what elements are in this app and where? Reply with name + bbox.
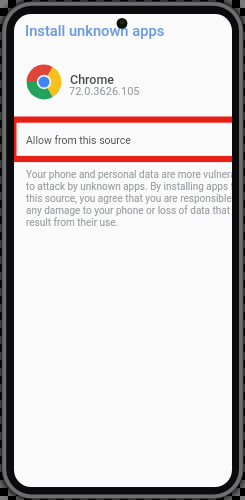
button[interactable]: Chrome: [14, 58, 232, 108]
staticText: Your phone and personal data are more vu…: [26, 169, 232, 229]
staticText: Allow from this source: [26, 134, 131, 146]
staticText: Chrome: [70, 72, 114, 87]
button[interactable]: Allow from this source: [14, 116, 232, 163]
staticText: 72.0.3626.105: [69, 85, 140, 98]
button[interactable]: Install unknown apps: [25, 22, 165, 39]
